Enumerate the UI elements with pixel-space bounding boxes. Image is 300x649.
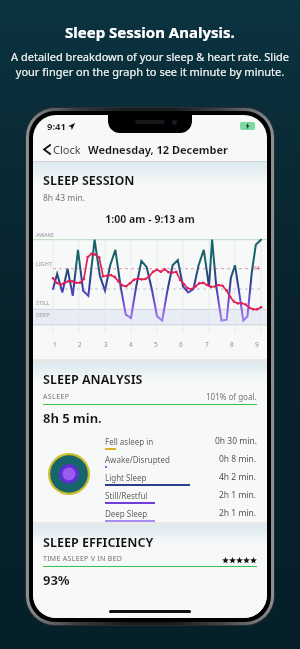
button[interactable]: Fell asleep in xyxy=(105,435,257,453)
staticText: Clock xyxy=(53,142,81,157)
staticText: Awake/Disrupted xyxy=(105,454,170,465)
staticText: 101% of goal. xyxy=(206,391,257,402)
staticText: 93% xyxy=(43,571,70,589)
staticText: Wednesday, 12 December xyxy=(88,142,229,157)
staticText: 8h 5 min. xyxy=(43,409,102,427)
staticText: 3 xyxy=(104,340,108,349)
staticText: A detailed breakdown of your sleep & hea… xyxy=(11,49,289,79)
staticText: Light Sleep xyxy=(105,472,147,483)
staticText: SLEEP SESSION xyxy=(43,172,135,189)
button[interactable]: Awake/Disrupted xyxy=(105,453,257,471)
button[interactable]: Clock xyxy=(41,139,83,160)
staticText: ASLEEP xyxy=(43,392,70,402)
staticText: LIGHT xyxy=(36,260,52,267)
staticText: DEEP xyxy=(36,311,50,318)
staticText: 0h 8 min. xyxy=(219,453,257,465)
staticText: 1 xyxy=(53,340,57,349)
staticText: 2h 1 min. xyxy=(219,507,257,519)
staticText: 9:41 xyxy=(47,120,66,133)
staticText: 0h 30 min. xyxy=(215,435,257,447)
staticText: Deep Sleep xyxy=(105,508,148,519)
staticText: Fell asleep in xyxy=(105,436,154,447)
staticText: 5 xyxy=(154,340,158,349)
staticText: 6 xyxy=(179,340,183,349)
staticText: Still/Restful xyxy=(105,490,148,501)
staticText: 2h 1 min. xyxy=(219,489,257,501)
staticText: 4h 2 min. xyxy=(219,471,257,483)
staticText: 9 xyxy=(255,340,259,349)
staticText: 8h 43 min. xyxy=(43,192,85,204)
staticText: SLEEP EFFICIENCY xyxy=(43,534,154,551)
staticText: 1:00 am - 9:13 am xyxy=(33,212,267,226)
staticText: STILL xyxy=(36,299,50,306)
staticText: 8 xyxy=(230,340,234,349)
staticText: SLEEP ANALYSIS xyxy=(43,371,143,388)
staticText: 64 xyxy=(254,265,260,272)
button[interactable]: Still/Restful xyxy=(105,489,257,507)
staticText: 2 xyxy=(78,340,82,349)
button[interactable]: Deep Sleep xyxy=(105,507,257,522)
staticText: Sleep Session Analysis. xyxy=(65,22,235,42)
staticText: 4 xyxy=(129,340,133,349)
button[interactable]: Light Sleep xyxy=(105,471,257,489)
staticText: TIME ASLEEP V IN BED xyxy=(43,554,123,564)
staticText: AWAKE xyxy=(36,231,55,238)
other: Home indicator xyxy=(109,610,191,613)
staticText: 7 xyxy=(205,340,209,349)
